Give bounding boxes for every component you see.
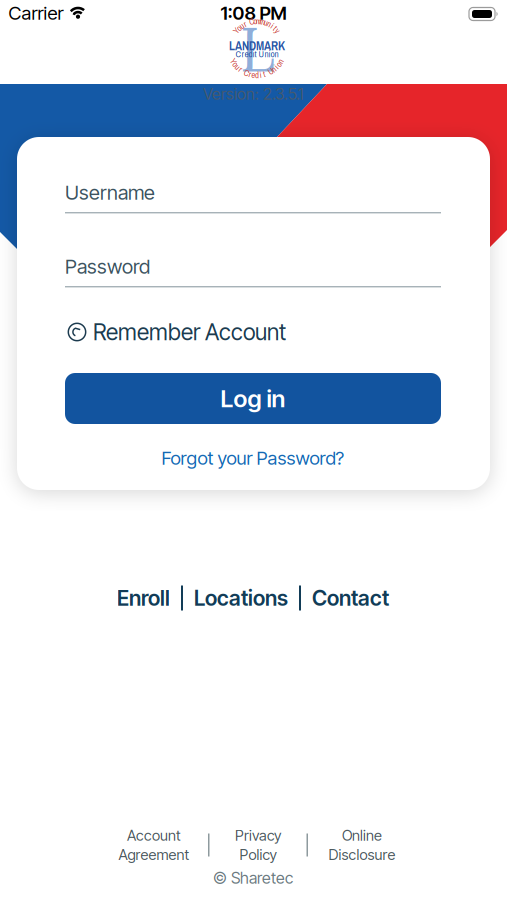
staticText: t bbox=[274, 22, 276, 34]
staticText: o bbox=[237, 22, 241, 34]
staticText: Log in bbox=[220, 384, 285, 413]
staticText: m bbox=[259, 16, 265, 27]
staticText bbox=[247, 17, 249, 28]
staticText: o bbox=[253, 15, 257, 27]
staticText: C bbox=[249, 16, 254, 27]
staticText: LANDMARK bbox=[229, 38, 285, 54]
staticText: n bbox=[279, 55, 283, 67]
button[interactable]: Contact bbox=[312, 585, 389, 611]
staticText: n bbox=[267, 18, 271, 30]
staticText: Enroll bbox=[117, 585, 170, 611]
staticText: u bbox=[236, 61, 240, 73]
staticText: Credit Union bbox=[235, 48, 278, 60]
staticText: C bbox=[244, 67, 249, 79]
staticText: n bbox=[272, 63, 276, 75]
staticText: d bbox=[255, 69, 259, 81]
staticText: Locations bbox=[194, 585, 288, 611]
button[interactable]: Locations bbox=[194, 585, 288, 611]
staticText bbox=[266, 67, 268, 79]
button[interactable]: Account bbox=[100, 827, 208, 863]
staticText: i bbox=[260, 69, 262, 81]
staticText: Username bbox=[65, 181, 155, 204]
staticText: t bbox=[263, 68, 265, 80]
staticText: Disclosure bbox=[328, 846, 395, 863]
staticText: m bbox=[256, 15, 262, 27]
staticText: Agreement bbox=[118, 846, 189, 863]
button[interactable]: Enroll bbox=[117, 585, 170, 611]
staticText: u bbox=[264, 17, 268, 28]
staticText: u bbox=[240, 20, 244, 32]
staticText: Privacy bbox=[235, 827, 281, 844]
staticText: U bbox=[268, 65, 273, 77]
staticText: y bbox=[276, 25, 280, 37]
staticText: Contact bbox=[312, 585, 389, 611]
staticText: Policy bbox=[239, 846, 276, 863]
staticText: L bbox=[239, 10, 274, 88]
button[interactable]: Password bbox=[65, 258, 441, 283]
staticText: r bbox=[244, 18, 246, 30]
staticText: Online bbox=[342, 827, 382, 844]
button[interactable]: Remember Account bbox=[67, 319, 443, 345]
button[interactable]: Privacy bbox=[209, 827, 306, 863]
staticText: Carrier bbox=[8, 2, 63, 24]
button[interactable]: Log in bbox=[65, 373, 441, 424]
button[interactable]: Forgot your Password? bbox=[161, 447, 344, 469]
staticText: i bbox=[271, 20, 273, 32]
staticText: Y bbox=[231, 55, 236, 67]
staticText: 1:08 PM bbox=[220, 2, 286, 24]
staticText: o bbox=[277, 58, 281, 70]
staticText: Y bbox=[234, 25, 239, 37]
staticText bbox=[242, 65, 244, 77]
staticText: Version: 2.3.5.1 bbox=[203, 85, 304, 103]
staticText: r bbox=[239, 63, 241, 75]
staticText: r bbox=[249, 68, 251, 80]
staticText: o bbox=[233, 58, 237, 70]
staticText: Password bbox=[65, 255, 150, 278]
staticText: Forgot your Password? bbox=[161, 447, 344, 469]
staticText: Account bbox=[127, 827, 181, 844]
button[interactable]: Online bbox=[308, 827, 416, 863]
staticText: i bbox=[275, 61, 277, 73]
staticText: © Sharetec bbox=[213, 869, 293, 887]
staticText: Remember Account bbox=[93, 319, 286, 345]
button[interactable]: Username bbox=[65, 184, 441, 209]
staticText: e bbox=[251, 69, 255, 81]
